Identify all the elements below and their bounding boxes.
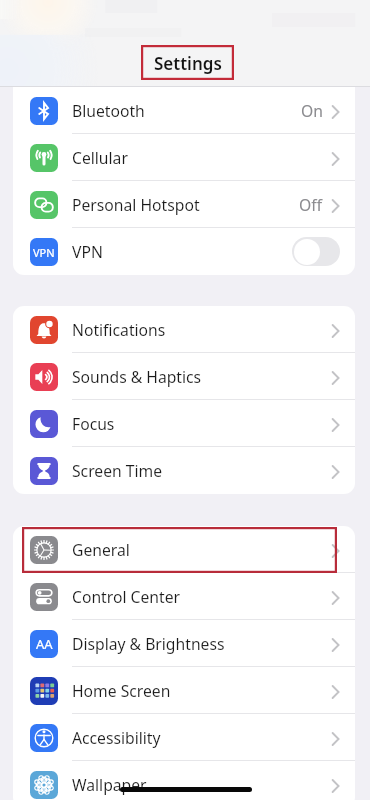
button[interactable]: Accessibility xyxy=(13,714,355,761)
staticText: Screen Time xyxy=(72,460,163,481)
staticText: Off xyxy=(299,194,323,215)
staticText: Focus xyxy=(72,413,115,434)
button[interactable]: Wallpaper xyxy=(13,761,355,800)
button[interactable]: Screen Time xyxy=(13,447,355,494)
button[interactable]: VPN xyxy=(13,228,355,275)
button[interactable]: AA xyxy=(13,620,355,667)
button[interactable]: Notifications xyxy=(13,306,355,353)
staticText: Personal Hotspot xyxy=(72,194,200,215)
button[interactable]: Personal Hotspot xyxy=(13,181,355,228)
button[interactable]: Toggle VPN xyxy=(292,237,340,266)
staticText: Settings xyxy=(154,52,222,75)
staticText: Display & Brightness xyxy=(72,633,225,654)
staticText: Wallpaper xyxy=(72,774,147,795)
staticText: AA xyxy=(36,635,53,653)
button[interactable]: General xyxy=(13,526,355,573)
button[interactable]: Focus xyxy=(13,400,355,447)
button[interactable]: Home Screen xyxy=(13,667,355,714)
staticText: On xyxy=(301,100,323,121)
staticText: Sounds & Haptics xyxy=(72,366,202,387)
staticText: Notifications xyxy=(72,319,166,340)
button[interactable]: Sounds & Haptics xyxy=(13,353,355,400)
button[interactable]: Cellular xyxy=(13,134,355,181)
staticText: Cellular xyxy=(72,147,128,168)
staticText: Home Screen xyxy=(72,680,171,701)
staticText: General xyxy=(72,539,130,560)
staticText: Accessibility xyxy=(72,727,161,748)
button[interactable]: Control Center xyxy=(13,573,355,620)
staticText: Bluetooth xyxy=(72,100,145,121)
staticText: Control Center xyxy=(72,586,180,607)
button[interactable]: Bluetooth xyxy=(13,87,355,134)
staticText: VPN xyxy=(72,241,103,262)
staticText: VPN xyxy=(33,245,55,260)
